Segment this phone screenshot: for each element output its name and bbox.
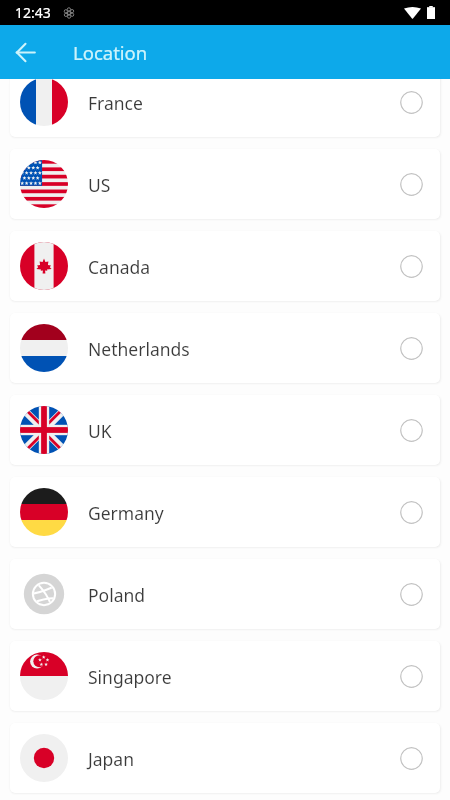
button[interactable]: Germany bbox=[10, 477, 440, 547]
button[interactable]: Canada bbox=[10, 231, 440, 301]
button[interactable]: US bbox=[10, 149, 440, 219]
button[interactable]: Singapore bbox=[10, 641, 440, 711]
button[interactable]: UK bbox=[10, 395, 440, 465]
staticText: Netherlands bbox=[88, 337, 190, 361]
staticText: Poland bbox=[88, 583, 146, 607]
button[interactable]: Select Poland bbox=[400, 583, 423, 606]
staticText: 12:43 bbox=[15, 3, 51, 22]
button[interactable]: France bbox=[10, 67, 440, 137]
staticText: Canada bbox=[88, 255, 151, 279]
button[interactable]: Select Canada bbox=[400, 255, 423, 278]
button[interactable]: Back bbox=[5, 32, 45, 72]
staticText: UK bbox=[88, 419, 112, 443]
button[interactable]: Netherlands bbox=[10, 313, 440, 383]
button[interactable]: Select Singapore bbox=[400, 665, 423, 688]
staticText: Japan bbox=[88, 747, 134, 771]
button[interactable]: Select Germany bbox=[400, 501, 423, 524]
staticText: Location bbox=[73, 40, 148, 65]
button[interactable]: Select Netherlands bbox=[400, 337, 423, 360]
staticText: France bbox=[88, 91, 143, 115]
button[interactable]: Select UK bbox=[400, 419, 423, 442]
staticText: Germany bbox=[88, 501, 164, 525]
button[interactable]: Select Japan bbox=[400, 747, 423, 770]
staticText: US bbox=[88, 173, 111, 197]
button[interactable]: Select France bbox=[400, 91, 423, 114]
button[interactable]: Select US bbox=[400, 173, 423, 196]
button[interactable]: Japan bbox=[10, 723, 440, 793]
staticText: Singapore bbox=[88, 665, 172, 689]
button[interactable]: Poland bbox=[10, 559, 440, 629]
